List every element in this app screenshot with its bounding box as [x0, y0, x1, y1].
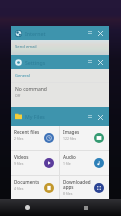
staticText: No command [15, 86, 47, 93]
button[interactable]: Downloaded apps [60, 176, 109, 200]
staticText: 9 files [14, 161, 24, 166]
staticText: Recent files [14, 129, 40, 135]
button[interactable]: Settings [11, 55, 109, 69]
staticText: 1 file [63, 161, 71, 166]
button[interactable]: Maximize [86, 113, 94, 121]
staticText: Settings [25, 59, 46, 66]
button[interactable]: My Files [11, 107, 109, 126]
staticText: Videos [14, 154, 29, 160]
staticText: Images [63, 129, 80, 135]
button[interactable]: Recent files [11, 126, 59, 150]
staticText: Documents [14, 179, 40, 185]
staticText: Downloaded apps [63, 179, 94, 190]
button[interactable]: Audio [60, 151, 109, 175]
staticText: 2 files [14, 136, 24, 141]
button[interactable]: Images [60, 126, 109, 150]
button[interactable]: Home [25, 205, 30, 210]
staticText: General [15, 73, 30, 78]
button[interactable]: Close [96, 58, 104, 66]
staticText: Off [15, 93, 21, 98]
button[interactable]: Internet [11, 26, 109, 40]
button[interactable]: Maximize [86, 58, 94, 66]
staticText: Audio [63, 154, 76, 160]
button[interactable]: Videos [11, 151, 59, 175]
button[interactable]: Documents [11, 176, 59, 200]
button[interactable]: Close [96, 29, 104, 37]
staticText: My Files [25, 113, 45, 120]
button[interactable]: Close [96, 113, 104, 121]
staticText: 4 files [14, 186, 24, 191]
staticText: 8 files [63, 191, 73, 196]
staticText: Send email [15, 44, 37, 50]
staticText: Internet [25, 30, 46, 37]
button[interactable]: Maximize [86, 29, 94, 37]
staticText: 122 files [63, 136, 77, 141]
